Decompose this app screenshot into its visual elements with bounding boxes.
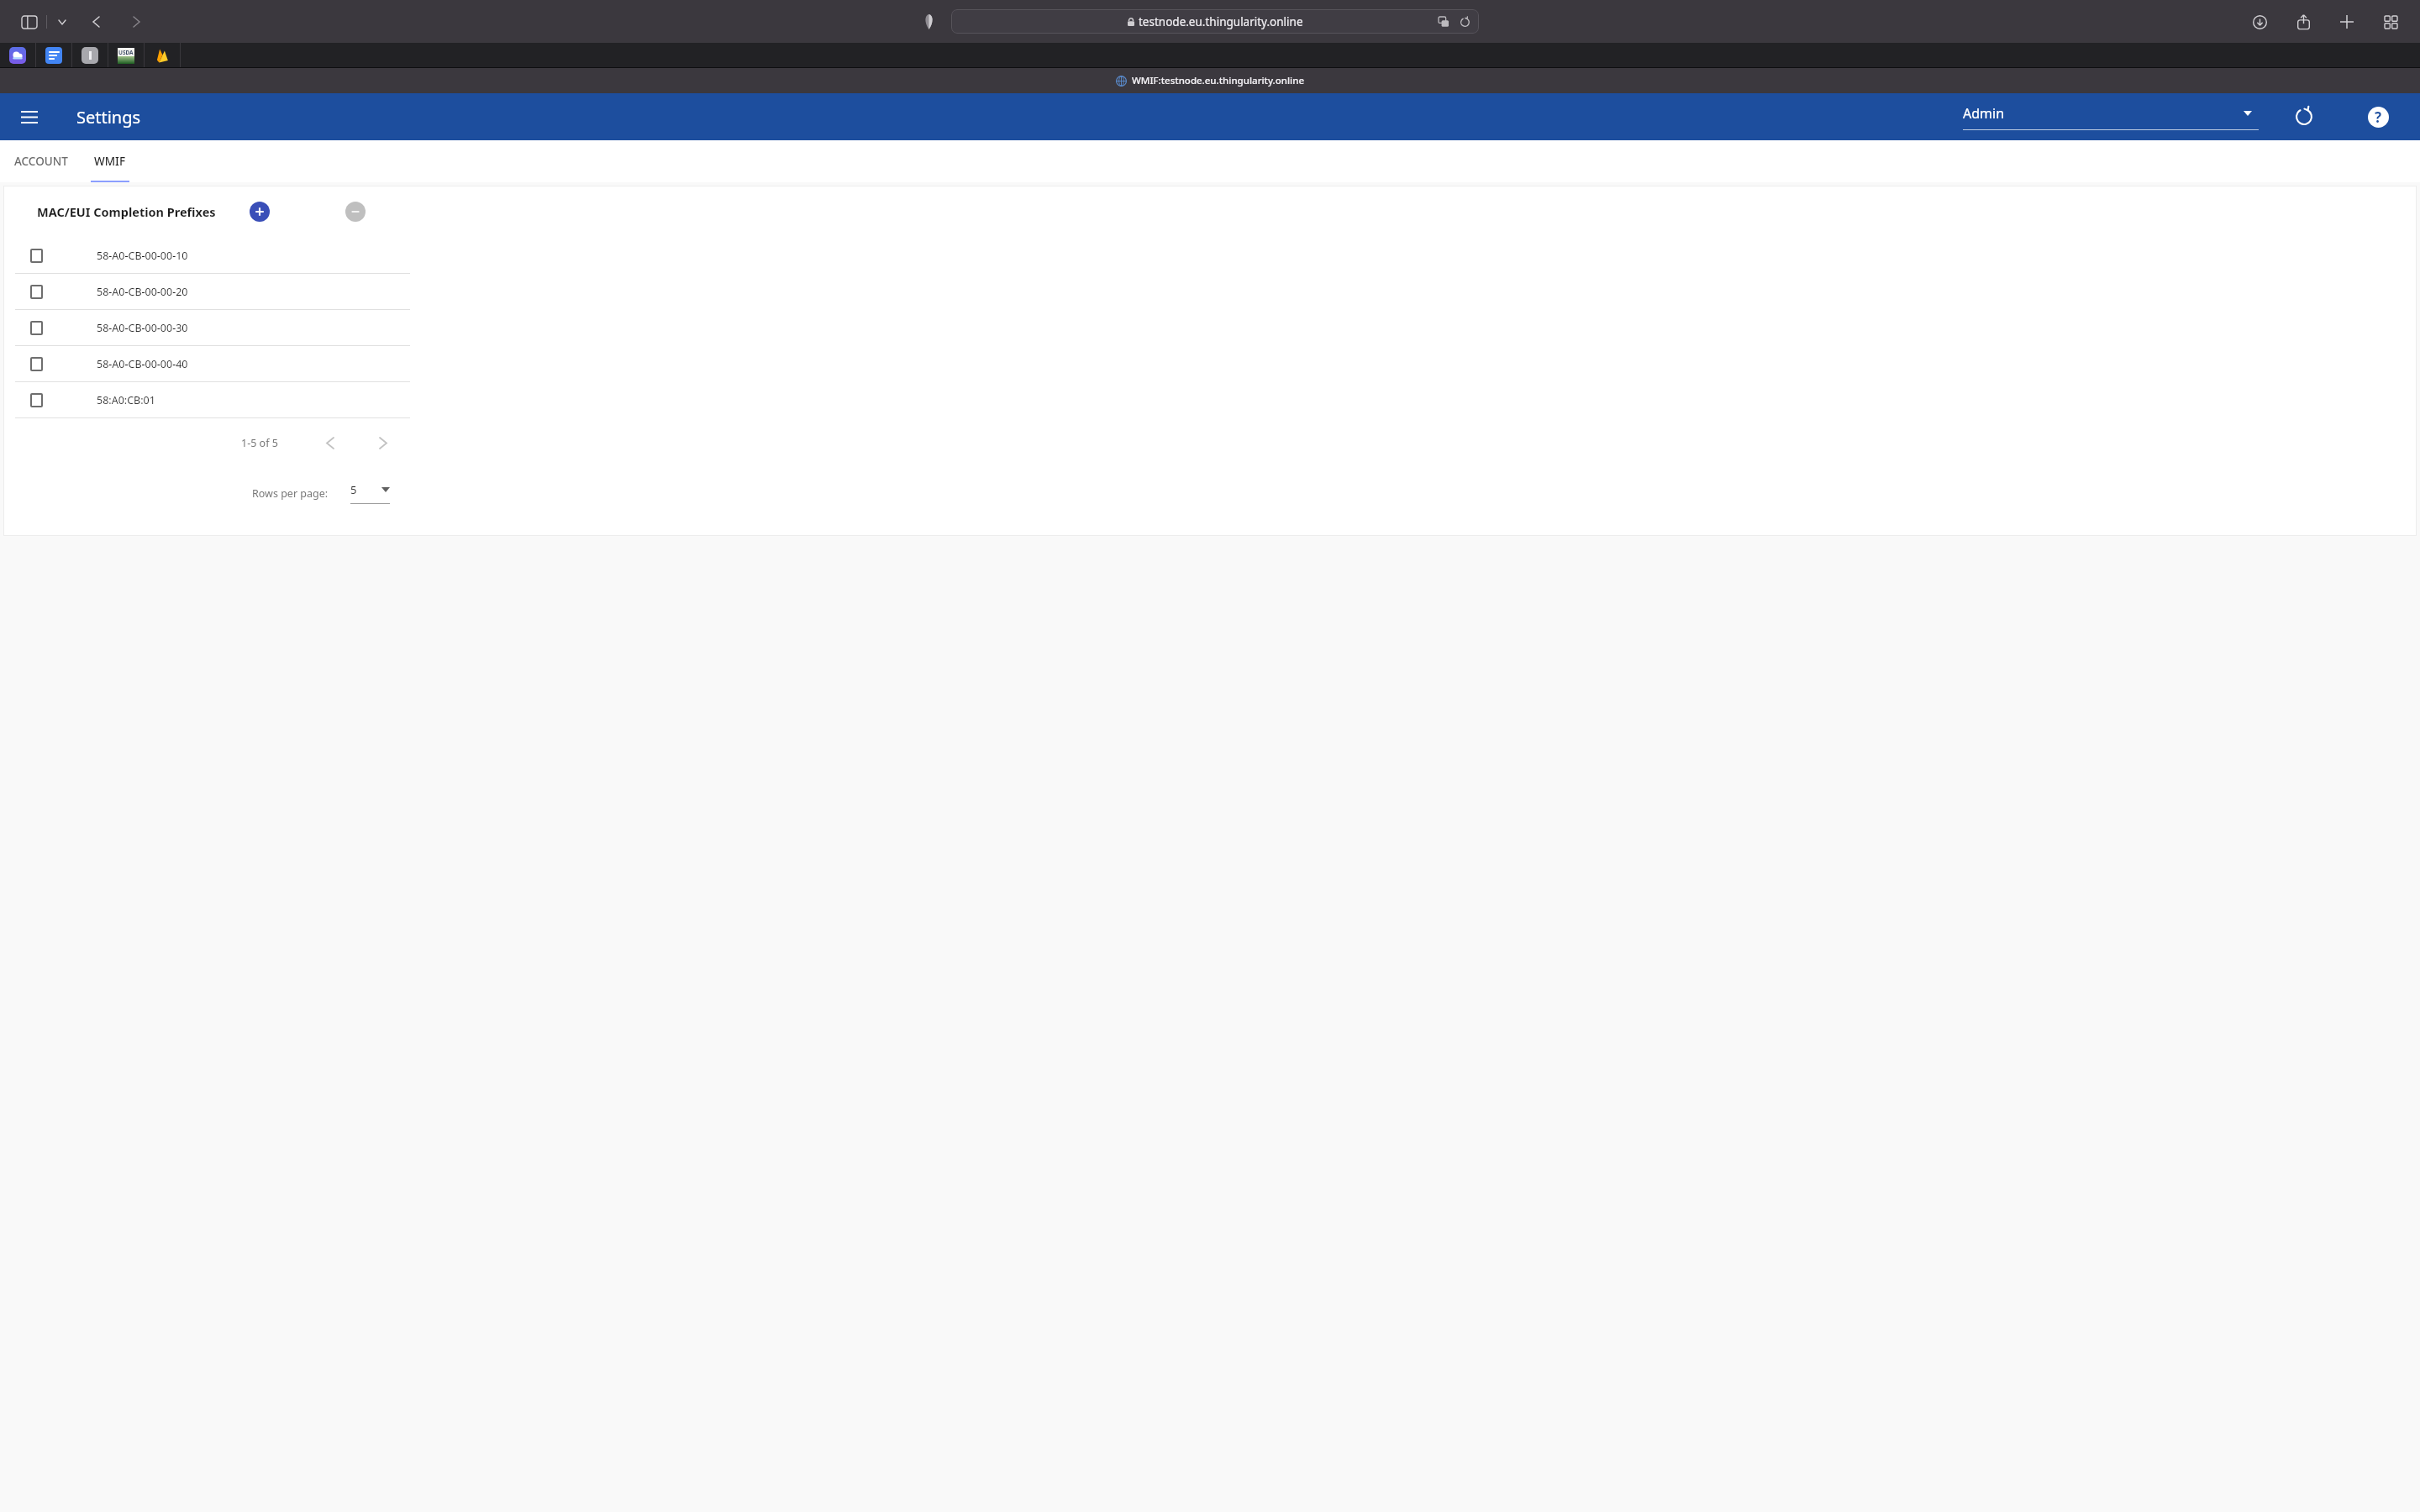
staticText: Admin	[1963, 104, 2005, 123]
button[interactable]: 5	[350, 482, 390, 504]
button[interactable]: WMIF	[82, 140, 139, 182]
button[interactable]: ACCOUNT	[0, 140, 82, 182]
button[interactable]: Select 58-A0-CB-00-00-30	[24, 315, 49, 340]
button[interactable]: Previous page	[313, 426, 347, 459]
button[interactable]: Help	[2359, 98, 2396, 135]
button[interactable]: Select 58-A0-CB-00-00-40	[24, 351, 49, 376]
button[interactable]: New tab	[2333, 8, 2361, 36]
button[interactable]: Bookmark	[108, 43, 144, 68]
button[interactable]: Next page	[366, 426, 400, 459]
button[interactable]: Bookmark	[36, 43, 71, 68]
staticText: 58:A0:CB:01	[97, 393, 155, 407]
staticText: 58-A0-CB-00-00-30	[97, 321, 188, 335]
button[interactable]: Remove prefix	[340, 197, 371, 227]
button[interactable]: Tab overview	[2376, 8, 2405, 36]
button[interactable]: Show sidebar	[15, 8, 44, 36]
button[interactable]: Refresh	[2286, 98, 2323, 135]
button[interactable]: Privacy report	[916, 9, 941, 34]
button[interactable]: Add prefix	[245, 197, 275, 227]
staticText: WMIF	[94, 154, 126, 169]
button[interactable]: Bookmark	[72, 43, 108, 68]
button[interactable]: Bookmark	[0, 43, 35, 68]
staticText: ACCOUNT	[14, 154, 68, 169]
button[interactable]: Select 58-A0-CB-00-00-20	[3, 274, 2417, 309]
button[interactable]: Sidebar options	[50, 9, 75, 34]
button[interactable]: Bookmark	[145, 43, 180, 68]
button[interactable]: Select 58-A0-CB-00-00-10	[24, 243, 49, 268]
button[interactable]: Select 58-A0-CB-00-00-10	[3, 238, 2417, 273]
staticText: 5	[350, 482, 357, 497]
button[interactable]: Reload	[1457, 14, 1472, 29]
staticText: 1-5 of 5	[241, 436, 278, 450]
button[interactable]: Back	[82, 8, 110, 36]
button[interactable]: Select 58:A0:CB:01	[3, 382, 2417, 417]
button[interactable]: Select 58-A0-CB-00-00-30	[3, 310, 2417, 345]
staticText: Settings	[76, 106, 141, 129]
button[interactable]: Translate	[1436, 14, 1451, 29]
button[interactable]: Select 58-A0-CB-00-00-40	[3, 346, 2417, 381]
button[interactable]: Menu	[9, 97, 50, 137]
staticText: Rows per page:	[252, 486, 329, 501]
button[interactable]: Select 58-A0-CB-00-00-20	[24, 279, 49, 304]
button[interactable]: Admin	[1963, 104, 2259, 130]
staticText: USDA	[118, 49, 134, 56]
button[interactable]: Downloads	[2245, 8, 2274, 36]
staticText: 58-A0-CB-00-00-40	[97, 357, 188, 371]
staticText: 58-A0-CB-00-00-10	[97, 249, 188, 263]
staticText: 58-A0-CB-00-00-20	[97, 285, 188, 299]
button[interactable]: Share	[2289, 8, 2317, 36]
staticText: WMIF:testnode.eu.thingularity.online	[1132, 74, 1305, 87]
button[interactable]: Select 58:A0:CB:01	[24, 387, 49, 412]
staticText: MAC/EUI Completion Prefixes	[37, 203, 216, 220]
button[interactable]: testnode.eu.thingularity.online	[951, 9, 1479, 34]
staticText: testnode.eu.thingularity.online	[1139, 14, 1303, 29]
button[interactable]: Forward	[122, 8, 150, 36]
staticText: ?	[2375, 108, 2382, 127]
